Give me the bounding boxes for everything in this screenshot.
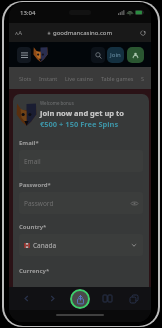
button[interactable]: Account — [127, 47, 144, 63]
button[interactable]: Forward — [45, 291, 60, 306]
button[interactable]: Instant — [39, 75, 65, 82]
button[interactable]: Join — [107, 47, 124, 63]
staticText: goodmancasino.com — [53, 29, 113, 37]
staticText: €500 + 150 Free Spins — [40, 119, 119, 129]
staticText: Table games — [101, 75, 134, 82]
staticText: Join — [110, 51, 121, 59]
button[interactable]: Password — [19, 192, 143, 214]
staticText: Password* — [19, 181, 51, 189]
staticText: Email* — [19, 139, 39, 147]
button[interactable]: Back — [19, 291, 34, 306]
button[interactable]: Table games — [101, 75, 141, 82]
button[interactable]: Reload — [138, 28, 147, 37]
staticText: 13:04 — [20, 9, 36, 17]
staticText: Currency* — [19, 267, 50, 275]
staticText: Welcome bonus — [40, 100, 74, 106]
staticText: Join now and get up to — [40, 108, 125, 118]
button[interactable]: Menu — [17, 47, 31, 63]
button[interactable]: S — [141, 75, 151, 82]
staticText: Instant — [39, 75, 58, 82]
staticText: Slots — [19, 75, 32, 82]
staticText: ᴀA — [15, 29, 22, 37]
staticText: Email — [24, 157, 41, 166]
button[interactable]: Canada — [19, 234, 143, 256]
staticText: Live casino — [65, 75, 94, 82]
button[interactable]: Slots — [19, 75, 39, 82]
button[interactable]: Share — [70, 289, 90, 309]
button[interactable]: Tabs — [126, 291, 141, 306]
staticText: S — [141, 75, 144, 82]
button[interactable]: Bookmarks — [100, 291, 115, 306]
staticText: Password — [24, 199, 54, 208]
staticText: Country* — [19, 223, 47, 231]
staticText: Canada — [33, 241, 57, 250]
button[interactable]: Live casino — [65, 75, 101, 82]
button[interactable]: Email — [19, 150, 143, 172]
button[interactable]: Search — [91, 47, 105, 63]
